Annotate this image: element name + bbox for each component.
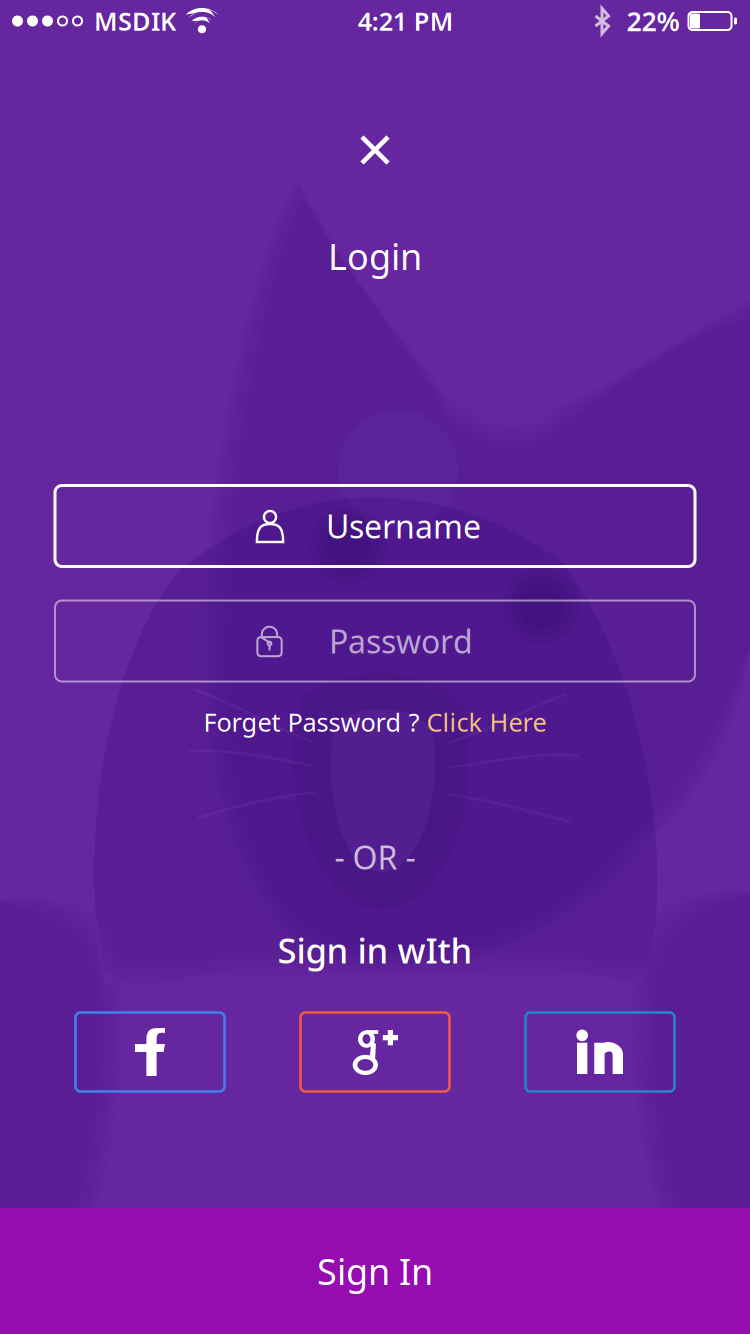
button[interactable]: Click Here <box>426 705 546 739</box>
staticText: - OR - <box>334 836 415 878</box>
staticText: Click Here <box>426 705 546 739</box>
staticText: Login <box>328 232 422 280</box>
staticText: Username <box>326 505 481 547</box>
staticText: MSDIK <box>94 4 176 38</box>
staticText: 4:21 PM <box>358 4 454 38</box>
button[interactable]: Username <box>55 485 695 566</box>
button[interactable]: Close <box>344 119 406 181</box>
staticText: Password <box>329 620 473 662</box>
button[interactable]: Sign In <box>0 1208 750 1334</box>
staticText: Sign in wIth <box>277 927 472 973</box>
staticText: Forget Password ? <box>203 705 426 739</box>
button[interactable]: Sign in with Facebook <box>75 1012 224 1091</box>
staticText: Sign In <box>317 1247 433 1295</box>
staticText: 22% <box>626 3 679 39</box>
button[interactable]: Sign in with Google <box>300 1012 449 1091</box>
button[interactable]: Sign in with LinkedIn <box>525 1012 674 1091</box>
button[interactable]: Password <box>55 600 695 681</box>
